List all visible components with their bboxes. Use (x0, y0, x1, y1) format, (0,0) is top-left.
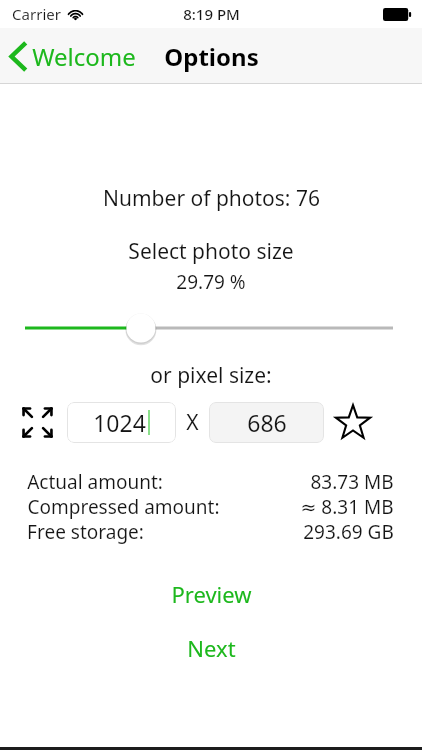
staticText: Select photo size (128, 237, 294, 266)
staticText: Preview (171, 579, 252, 609)
button[interactable]: Save as favorite (330, 399, 376, 445)
staticText: Next (187, 633, 236, 663)
staticText: Welcome (32, 40, 136, 73)
staticText: Actual amount: (27, 469, 163, 494)
staticText: or pixel size: (150, 361, 272, 390)
button[interactable]: Preview (145, 574, 278, 614)
staticText: 83.73 MB (310, 469, 394, 494)
staticText: 8:19 PM (183, 4, 240, 24)
button[interactable]: 1024 (67, 402, 176, 443)
button[interactable]: Next (161, 628, 262, 668)
button[interactable]: 686 (209, 402, 324, 443)
staticText: ≈ 8.31 MB (300, 494, 394, 519)
button[interactable]: Welcome (0, 34, 146, 79)
staticText: 686 (247, 407, 287, 438)
staticText: 29.79 % (176, 269, 246, 295)
button[interactable] (0, 308, 422, 348)
staticText: Carrier (12, 4, 61, 24)
staticText: 1024 (93, 407, 146, 438)
staticText: Number of photos: 76 (103, 184, 320, 213)
staticText: Free storage: (27, 519, 144, 544)
staticText: 293.69 GB (303, 519, 394, 544)
button[interactable]: Toggle aspect ratio lock (16, 401, 59, 444)
staticText: Options (164, 40, 259, 73)
staticText: X (186, 408, 199, 437)
staticText: Compressed amount: (27, 494, 220, 519)
